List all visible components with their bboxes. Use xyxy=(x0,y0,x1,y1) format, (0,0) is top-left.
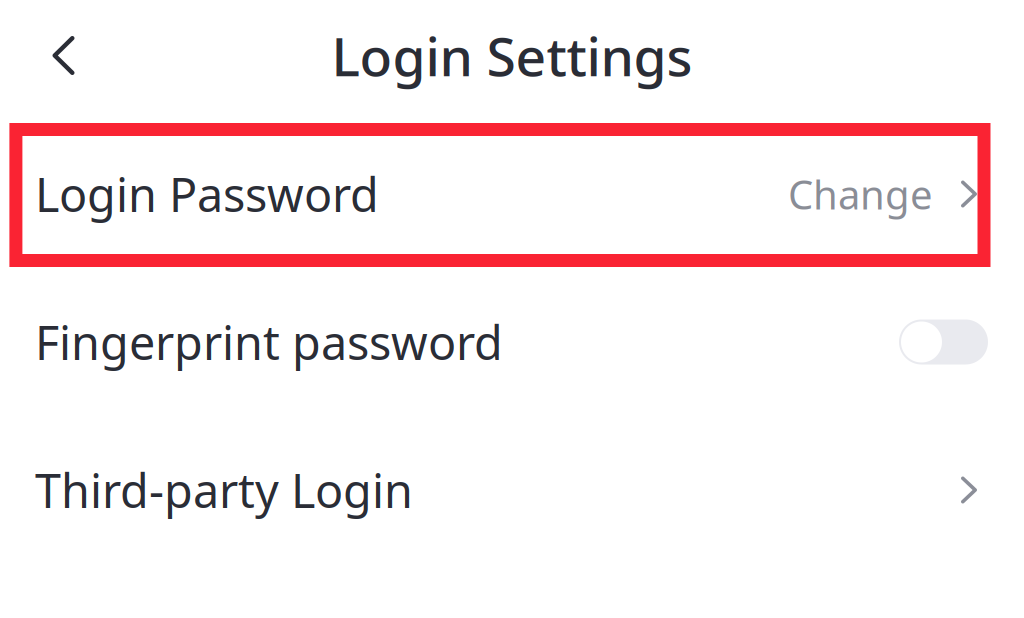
staticText: Change xyxy=(788,167,933,220)
staticText: Fingerprint password xyxy=(35,311,503,373)
staticText: Third-party Login xyxy=(35,459,413,521)
staticText: Login Password xyxy=(35,163,379,225)
staticText: Login Settings xyxy=(331,20,692,91)
button[interactable]: Back xyxy=(0,0,127,112)
button[interactable]: Fingerprint password xyxy=(899,319,988,364)
button[interactable]: Login Password xyxy=(0,121,1024,267)
button[interactable]: Third-party Login xyxy=(0,417,1024,563)
